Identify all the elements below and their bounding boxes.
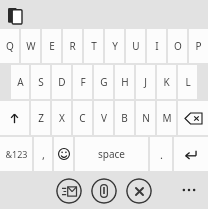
button[interactable]: S	[31, 65, 50, 99]
staticText: A	[17, 75, 24, 89]
staticText: H	[121, 75, 129, 89]
button[interactable]: Close	[126, 178, 152, 204]
button[interactable]: ,	[34, 137, 52, 171]
button[interactable]: A	[11, 65, 29, 99]
staticText: B	[121, 111, 128, 125]
staticText: ,	[42, 147, 45, 162]
button[interactable]: Emoji	[54, 137, 73, 171]
button[interactable]: V	[94, 101, 113, 135]
button[interactable]: N	[136, 101, 155, 135]
staticText: I	[155, 39, 159, 53]
button[interactable]: J	[136, 65, 155, 99]
button[interactable]: E	[42, 29, 61, 63]
staticText: .	[160, 147, 163, 162]
button[interactable]: Clipboard	[5, 5, 25, 25]
staticText: N	[142, 111, 150, 125]
staticText: G	[100, 75, 108, 89]
staticText: X	[59, 111, 65, 125]
button[interactable]: Q	[0, 29, 19, 63]
staticText: M	[162, 111, 172, 125]
button[interactable]: K	[157, 65, 176, 99]
staticText: U	[132, 39, 140, 53]
button[interactable]: Send	[56, 178, 82, 204]
staticText: F	[80, 75, 86, 89]
button[interactable]: Y	[105, 29, 124, 63]
button[interactable]: C	[73, 101, 92, 135]
staticText: K	[163, 75, 170, 89]
staticText: V	[101, 111, 107, 125]
staticText: &123	[5, 148, 28, 160]
button[interactable]: Attach	[91, 178, 117, 204]
button[interactable]: M	[157, 101, 176, 135]
staticText: Z	[38, 111, 44, 125]
staticText: P	[195, 39, 202, 53]
staticText: L	[185, 75, 191, 89]
staticText: D	[58, 75, 66, 89]
staticText: S	[38, 75, 44, 89]
button[interactable]: .	[150, 137, 172, 171]
button[interactable]: Enter	[174, 137, 208, 171]
button[interactable]: L	[178, 65, 197, 99]
button[interactable]: D	[52, 65, 71, 99]
button[interactable]: I	[147, 29, 166, 63]
button[interactable]: H	[115, 65, 134, 99]
button[interactable]: F	[73, 65, 92, 99]
staticText: W	[26, 39, 36, 53]
button[interactable]: Shift	[0, 101, 29, 135]
button[interactable]: Z	[31, 101, 50, 135]
staticText: O	[174, 39, 182, 53]
button[interactable]: U	[126, 29, 145, 63]
button[interactable]: P	[189, 29, 208, 63]
button[interactable]: W	[21, 29, 40, 63]
staticText: R	[69, 39, 76, 53]
button[interactable]: T	[84, 29, 103, 63]
button[interactable]: B	[115, 101, 134, 135]
button[interactable]: space	[75, 137, 148, 171]
staticText: J	[144, 75, 147, 89]
staticText: T	[91, 39, 97, 53]
button[interactable]: &123	[0, 137, 32, 171]
button[interactable]: R	[63, 29, 82, 63]
button[interactable]: More options	[176, 179, 202, 201]
staticText: E	[49, 39, 55, 53]
staticText: space	[98, 147, 125, 161]
button[interactable]: Backspace	[178, 101, 208, 135]
button[interactable]: G	[94, 65, 113, 99]
button[interactable]: O	[168, 29, 187, 63]
staticText: C	[79, 111, 86, 125]
staticText: Y	[112, 39, 118, 53]
staticText: Q	[6, 39, 14, 53]
button[interactable]: X	[52, 101, 71, 135]
